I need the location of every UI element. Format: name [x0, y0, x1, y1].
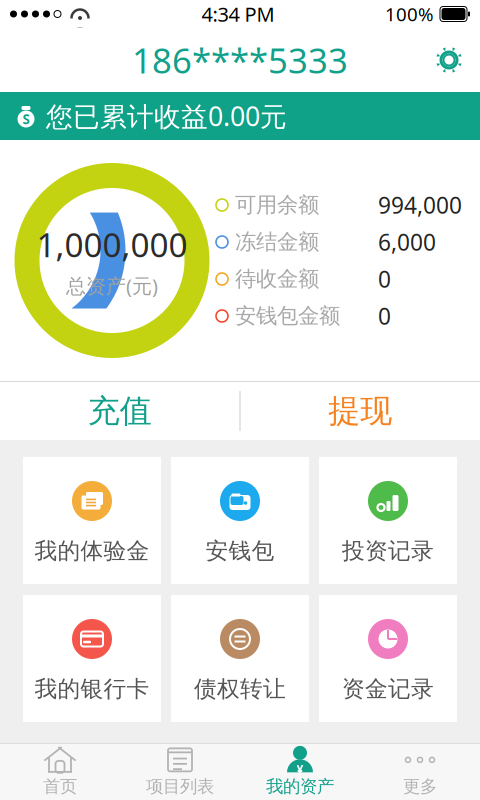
staticText: 充值 [88, 391, 152, 431]
staticText: 100% [385, 2, 434, 26]
staticText: 6,000 [378, 227, 436, 257]
staticText: 提现 [328, 391, 392, 431]
staticText: 首页 [43, 776, 77, 797]
button[interactable]: 我的体验金 [23, 457, 161, 584]
button[interactable]: 更多 [360, 744, 480, 800]
button[interactable]: 项目列表 [120, 744, 240, 800]
staticText: 我的资产 [266, 776, 334, 797]
staticText: 债权转让 [194, 675, 286, 703]
staticText: 待收金额 [235, 266, 319, 292]
staticText: 更多 [403, 776, 437, 797]
button[interactable]: 充值 [0, 382, 239, 440]
staticText: 总资产(元) [66, 272, 158, 299]
staticText: 安钱包金额 [235, 303, 340, 329]
button[interactable]: 首页 [0, 744, 120, 800]
staticText: 安钱包 [205, 537, 274, 565]
staticText: 1,000,000 [36, 222, 187, 266]
staticText: 您已累计收益0.00元 [46, 98, 287, 134]
staticText: S [22, 110, 29, 128]
button[interactable]: 提现 [240, 382, 480, 440]
staticText: 186****5333 [132, 37, 348, 83]
staticText: 0 [378, 301, 391, 331]
button[interactable]: ¥ [240, 744, 360, 800]
staticText: 投资记录 [342, 537, 434, 565]
staticText: 可用余额 [235, 192, 319, 218]
staticText: 项目列表 [146, 776, 214, 797]
staticText: 我的体验金 [34, 537, 149, 565]
staticText: 4:34 PM [201, 1, 274, 27]
staticText: 资金记录 [342, 675, 434, 703]
staticText: 994,000 [378, 190, 462, 220]
button[interactable]: 资金记录 [319, 595, 457, 722]
staticText: 0 [378, 264, 391, 294]
staticText: ¥ [296, 761, 303, 777]
staticText: 冻结金额 [235, 229, 319, 255]
button[interactable]: 债权转让 [171, 595, 309, 722]
button[interactable]: Settings [434, 45, 480, 75]
button[interactable]: 安钱包 [171, 457, 309, 584]
button[interactable]: 我的银行卡 [23, 595, 161, 722]
staticText: 我的银行卡 [34, 675, 149, 703]
button[interactable]: 投资记录 [319, 457, 457, 584]
